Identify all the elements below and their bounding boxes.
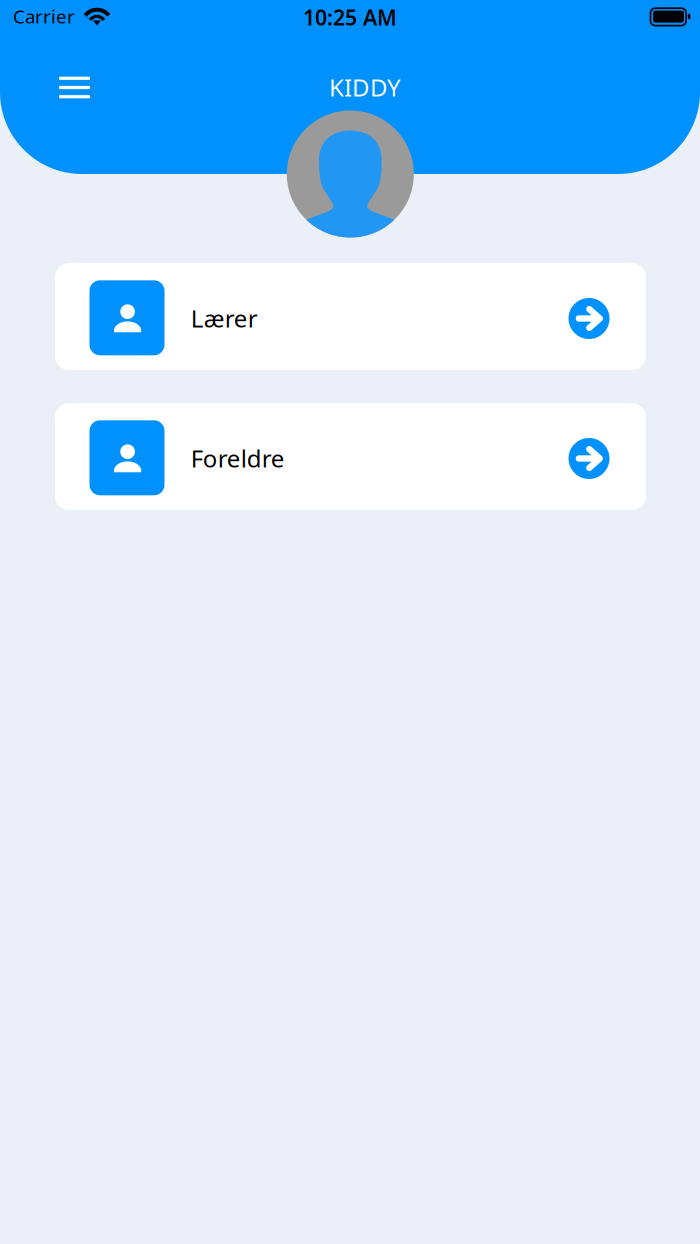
staticText: Lærer — [191, 302, 258, 334]
button[interactable]: Lærer — [55, 263, 646, 370]
button[interactable]: Menu — [46, 61, 102, 113]
button[interactable]: Foreldre — [55, 403, 646, 510]
staticText: 10:25 AM — [303, 3, 397, 31]
staticText: KIDDY — [329, 71, 401, 103]
staticText: Foreldre — [191, 442, 285, 474]
staticText: Carrier — [13, 4, 75, 29]
